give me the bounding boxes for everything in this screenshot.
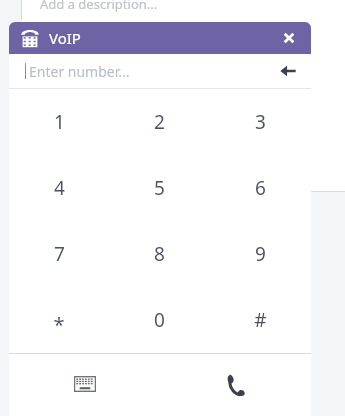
staticText: 1 bbox=[54, 109, 65, 135]
button[interactable]: 8 bbox=[109, 221, 210, 287]
button[interactable]: 9 bbox=[210, 221, 311, 287]
staticText: VoIP bbox=[49, 28, 81, 48]
staticText: 9 bbox=[255, 241, 266, 267]
staticText: * bbox=[53, 311, 65, 338]
staticText: 5 bbox=[154, 175, 165, 201]
button[interactable]: 0 bbox=[109, 287, 210, 353]
button[interactable]: Show keyboard bbox=[9, 354, 160, 416]
button[interactable]: Call bbox=[160, 354, 311, 416]
button[interactable]: 5 bbox=[109, 155, 210, 221]
button[interactable]: 1 bbox=[9, 89, 109, 155]
staticText: 2 bbox=[154, 109, 165, 135]
button[interactable]: 6 bbox=[210, 155, 311, 221]
button[interactable]: 3 bbox=[210, 89, 311, 155]
button[interactable]: 2 bbox=[109, 89, 210, 155]
staticText: 4 bbox=[54, 175, 65, 201]
staticText: 6 bbox=[255, 175, 266, 201]
button[interactable]: Enter number... bbox=[29, 62, 271, 81]
button[interactable]: 7 bbox=[9, 221, 109, 287]
button[interactable]: # bbox=[210, 287, 311, 353]
button[interactable]: 4 bbox=[9, 155, 109, 221]
button[interactable]: * bbox=[9, 287, 109, 353]
staticText: Add a description... bbox=[40, 0, 158, 13]
staticText: Enter number... bbox=[29, 62, 130, 81]
staticText: 8 bbox=[154, 241, 165, 267]
staticText: # bbox=[254, 307, 267, 333]
staticText: 7 bbox=[54, 241, 65, 267]
staticText: 0 bbox=[154, 307, 165, 333]
staticText: 3 bbox=[255, 109, 266, 135]
button[interactable]: Backspace bbox=[271, 54, 305, 88]
button[interactable]: Close bbox=[273, 22, 305, 54]
